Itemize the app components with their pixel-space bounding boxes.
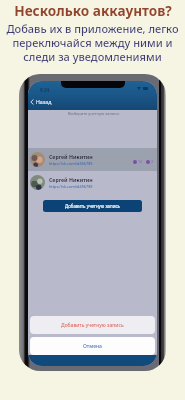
button[interactable]: Добавить учетную запись [43, 200, 142, 212]
staticText: Добавь их в приложение, легко переключай… [6, 21, 179, 65]
staticText: https://vk.com/id456789 [49, 161, 93, 166]
button[interactable]: Сергей Никитин [30, 150, 154, 168]
button[interactable]: Добавить учетную запись [30, 316, 155, 334]
staticText: Добавить учетную запись [61, 322, 124, 329]
button[interactable]: Сергей Никитин [30, 173, 154, 191]
staticText: 12 [138, 159, 143, 164]
staticText: 9:34 [40, 87, 50, 93]
staticText: https://vk.com/id456789 [49, 184, 93, 189]
button[interactable]: Отмена [30, 337, 155, 355]
staticText: Выберите учетную запись: [68, 111, 120, 116]
staticText: Сергей Никитин [49, 153, 93, 160]
staticText: 3 [151, 159, 154, 164]
staticText: Сергей Никитин [49, 176, 93, 183]
staticText: Добавить учетную запись [65, 203, 120, 209]
staticText: Назад [36, 98, 52, 105]
staticText: Несколько аккаунтов? [14, 1, 172, 20]
button[interactable]: Назад [30, 98, 52, 105]
staticText: Отмена [83, 343, 102, 350]
button[interactable] [28, 148, 157, 171]
